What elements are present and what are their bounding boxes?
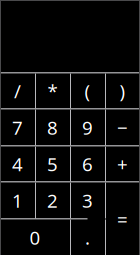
- button[interactable]: 1: [0, 182, 35, 218]
- button[interactable]: 4: [0, 146, 35, 181]
- staticText: 9: [82, 115, 93, 140]
- staticText: *: [47, 79, 57, 103]
- staticText: 1: [12, 188, 23, 213]
- staticText: 5: [47, 152, 58, 176]
- staticText: .: [85, 225, 90, 250]
- button[interactable]: 9: [70, 109, 105, 145]
- staticText: ): [119, 79, 125, 103]
- staticText: (: [84, 79, 90, 103]
- staticText: +: [117, 152, 128, 176]
- button[interactable]: =: [105, 182, 140, 255]
- staticText: −: [117, 115, 128, 140]
- button[interactable]: 3: [70, 182, 105, 218]
- button[interactable]: 7: [0, 109, 35, 145]
- staticText: 0: [29, 225, 40, 250]
- staticText: 6: [82, 152, 93, 176]
- button[interactable]: /: [0, 73, 35, 108]
- button[interactable]: 8: [35, 109, 70, 145]
- button[interactable]: *: [35, 73, 70, 108]
- staticText: 3: [82, 188, 93, 213]
- button[interactable]: 6: [70, 146, 105, 181]
- button[interactable]: 2: [35, 182, 70, 218]
- staticText: 8: [47, 115, 58, 140]
- button[interactable]: 5: [35, 146, 70, 181]
- staticText: 7: [12, 115, 23, 140]
- button[interactable]: 0: [0, 219, 70, 255]
- staticText: 4: [12, 152, 23, 176]
- staticText: =: [117, 207, 128, 231]
- staticText: /: [14, 79, 21, 103]
- button[interactable]: +: [105, 146, 140, 181]
- button[interactable]: ): [105, 73, 140, 108]
- button[interactable]: (: [70, 73, 105, 108]
- button[interactable]: .: [70, 219, 105, 255]
- staticText: 2: [47, 188, 58, 213]
- button[interactable]: −: [105, 109, 140, 145]
